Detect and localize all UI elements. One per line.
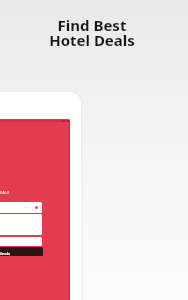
button[interactable] bbox=[0, 202, 42, 213]
staticText: SEARCH CHEAP HOTEL DEALS bbox=[0, 190, 10, 195]
button[interactable] bbox=[0, 237, 42, 246]
button[interactable]: Find hotel deals bbox=[0, 247, 43, 256]
button[interactable] bbox=[0, 214, 42, 235]
staticText: Find hotel deals bbox=[0, 251, 11, 256]
staticText: Find Best Hotel Deals bbox=[0, 15, 186, 50]
